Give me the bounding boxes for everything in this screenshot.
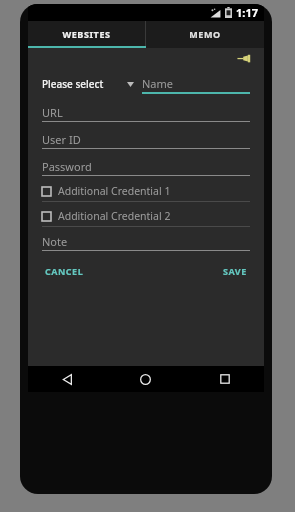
button[interactable]: MEMO bbox=[146, 21, 264, 46]
button[interactable]: URL bbox=[42, 104, 250, 122]
button[interactable]: Home bbox=[106, 366, 185, 392]
staticText: Name bbox=[142, 76, 174, 91]
button[interactable]: Recents bbox=[185, 366, 264, 392]
staticText: SAVE bbox=[223, 265, 247, 277]
button[interactable]: SAVE bbox=[222, 262, 248, 280]
staticText: Please select bbox=[42, 77, 104, 91]
staticText: Additional Credential 2 bbox=[58, 209, 171, 223]
button[interactable]: Additional Credential 1 bbox=[42, 181, 250, 202]
staticText: WEBSITES bbox=[62, 28, 111, 40]
staticText: 1:17 bbox=[236, 5, 258, 20]
button[interactable]: Password bbox=[42, 158, 250, 176]
button[interactable]: WEBSITES bbox=[28, 21, 145, 46]
button[interactable]: User ID bbox=[42, 131, 250, 149]
staticText: URL bbox=[42, 105, 63, 120]
staticText: Password bbox=[42, 159, 92, 174]
button[interactable]: Back bbox=[28, 366, 106, 392]
button[interactable]: Additional Credential 2 bbox=[42, 206, 250, 227]
staticText: MEMO bbox=[189, 28, 221, 40]
button[interactable]: Name bbox=[142, 74, 250, 92]
staticText: User ID bbox=[42, 132, 81, 147]
button[interactable]: CANCEL bbox=[44, 262, 85, 280]
button[interactable]: Pin bbox=[234, 49, 256, 71]
button[interactable]: Please select bbox=[42, 74, 134, 94]
staticText: Note bbox=[42, 234, 68, 249]
staticText: CANCEL bbox=[45, 265, 84, 277]
staticText: Additional Credential 1 bbox=[58, 184, 171, 198]
button[interactable]: Note bbox=[42, 233, 250, 251]
